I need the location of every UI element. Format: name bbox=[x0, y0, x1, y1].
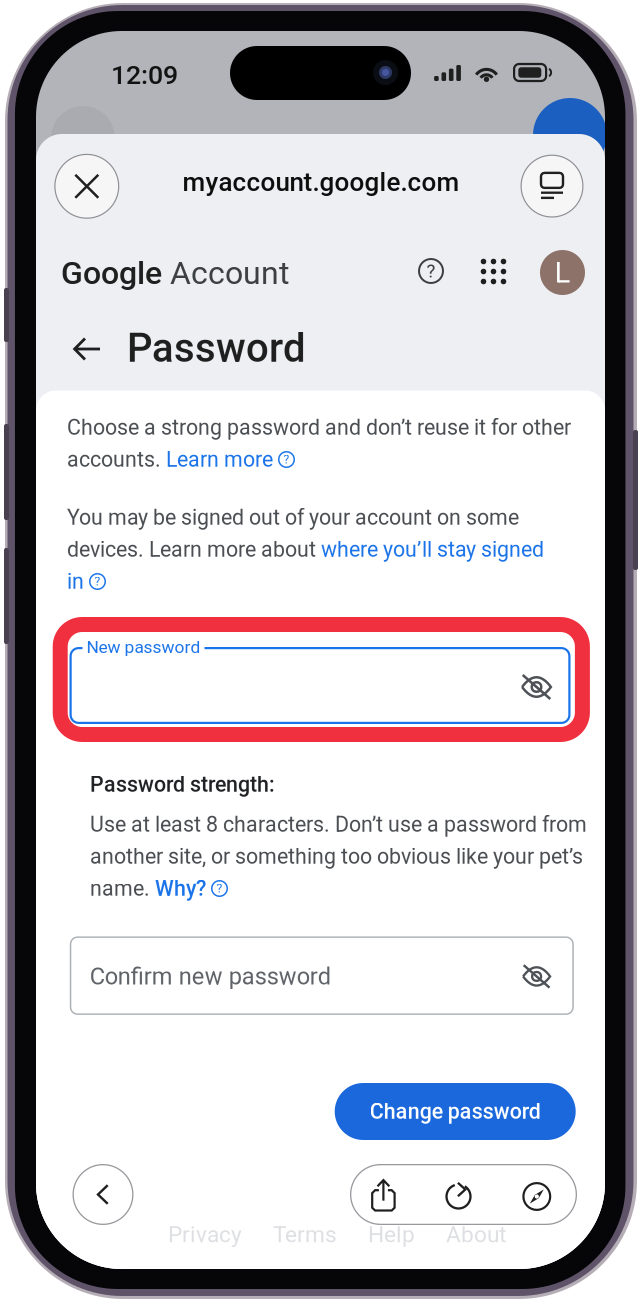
staticText: Learn more bbox=[166, 447, 273, 472]
staticText: devices. Learn more about bbox=[67, 537, 321, 562]
staticText: New password bbox=[82, 637, 204, 657]
button[interactable]: Show password bbox=[520, 673, 552, 701]
button[interactable]: Change password bbox=[335, 1083, 576, 1140]
staticText: ? bbox=[94, 574, 100, 589]
button[interactable]: Why? bbox=[155, 876, 228, 901]
button[interactable]: Reload bbox=[445, 1182, 471, 1209]
staticText: Privacy bbox=[168, 1221, 242, 1248]
button[interactable]: Share bbox=[371, 1179, 396, 1212]
staticText: Choose a strong password and don’t reuse… bbox=[67, 415, 571, 440]
staticText: where you’ll stay signed bbox=[321, 537, 544, 562]
staticText: in bbox=[67, 569, 84, 594]
staticText: Terms bbox=[273, 1221, 337, 1248]
staticText: another site, or something too obvious l… bbox=[90, 844, 583, 869]
staticText: Password strength: bbox=[90, 772, 275, 797]
button[interactable]: Google apps bbox=[481, 259, 506, 284]
staticText: name. bbox=[90, 876, 155, 901]
button[interactable]: Back bbox=[71, 1164, 134, 1225]
staticText: ? bbox=[283, 452, 289, 467]
button[interactable]: Back bbox=[73, 337, 101, 361]
staticText: About bbox=[446, 1221, 506, 1248]
button[interactable]: Help bbox=[418, 258, 444, 284]
staticText: Account bbox=[162, 254, 289, 292]
staticText: accounts. bbox=[67, 447, 166, 472]
staticText: ? bbox=[426, 260, 435, 282]
staticText: You may be signed out of your account on… bbox=[67, 505, 519, 530]
staticText: myaccount.google.com bbox=[182, 167, 459, 197]
button[interactable]: Page settings bbox=[520, 155, 584, 218]
button[interactable]: Close bbox=[54, 154, 119, 219]
staticText: Password bbox=[127, 325, 306, 371]
button[interactable]: Google Account bbox=[540, 250, 585, 295]
staticText: Change password bbox=[370, 1099, 541, 1124]
staticText: Why? bbox=[155, 876, 206, 901]
staticText: 12:09 bbox=[111, 59, 178, 91]
button[interactable]: Open in Safari bbox=[522, 1182, 551, 1211]
staticText: Confirm new password bbox=[90, 963, 331, 990]
button[interactable]: Learn more bbox=[166, 447, 295, 472]
staticText: Use at least 8 characters. Don’t use a p… bbox=[90, 812, 587, 837]
staticText: ? bbox=[216, 881, 222, 896]
staticText: Google bbox=[61, 254, 162, 292]
staticText: L bbox=[554, 255, 570, 290]
button[interactable]: Show password bbox=[522, 963, 552, 989]
staticText: Help bbox=[368, 1221, 415, 1248]
